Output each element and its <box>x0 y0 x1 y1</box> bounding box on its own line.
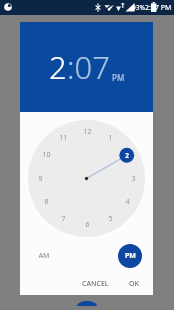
button[interactable]: Home <box>0 296 174 310</box>
staticText: PM <box>125 251 136 261</box>
staticText: 2 <box>125 151 129 160</box>
staticText: 9 <box>38 174 43 184</box>
staticText: 12 <box>83 127 92 137</box>
button[interactable]: AM <box>32 244 56 268</box>
button[interactable]: PM <box>118 244 142 268</box>
staticText: 11 <box>59 133 68 143</box>
staticText: 7 <box>61 214 66 224</box>
button[interactable]: Hour dial, 2 selected <box>28 120 145 237</box>
staticText: CANCEL <box>82 279 109 289</box>
staticText: 10 <box>42 150 51 160</box>
staticText: 8 <box>44 197 49 207</box>
button[interactable]: 2 <box>49 46 67 88</box>
staticText: 5 <box>108 214 113 224</box>
staticText: 2:07 PM <box>145 3 172 13</box>
staticText: 93% <box>132 3 145 12</box>
staticText: 6 <box>85 220 90 230</box>
staticText: 3 <box>131 174 136 184</box>
staticText: AM <box>38 251 50 261</box>
button[interactable]: OK <box>129 279 139 289</box>
button[interactable]: PM <box>112 72 125 83</box>
button[interactable]: CANCEL <box>82 279 109 289</box>
button[interactable]: :07 <box>67 46 110 88</box>
staticText: OK <box>129 279 139 289</box>
staticText: 4 <box>125 197 130 207</box>
staticText: 1 <box>108 133 113 143</box>
staticText: PM <box>112 72 125 83</box>
